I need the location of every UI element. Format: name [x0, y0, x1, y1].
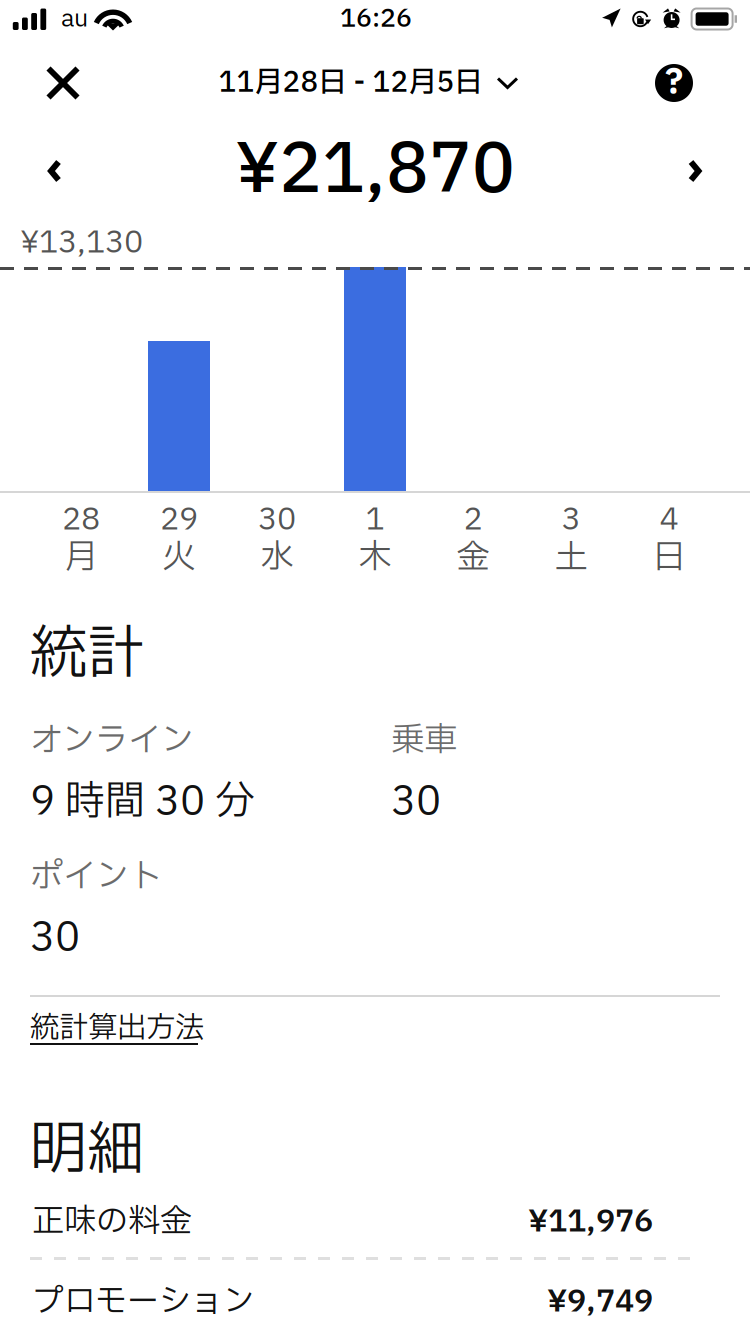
staticText: au — [61, 1, 88, 37]
staticText: 2 — [463, 497, 482, 543]
button[interactable]: 11月28日 - 12月5日 — [218, 63, 518, 103]
staticText: ポイント — [30, 852, 162, 902]
button[interactable]: Previous week — [0, 140, 110, 202]
staticText: 木 — [358, 533, 391, 583]
staticText: 30 — [30, 908, 80, 968]
staticText: 1 — [365, 497, 384, 543]
staticText: ¥11,976 — [528, 1199, 653, 1245]
staticText: ? — [665, 57, 683, 109]
staticText: 水 — [260, 533, 293, 583]
staticText: 統計算出方法 — [30, 1006, 204, 1050]
staticText: 金 — [456, 533, 489, 583]
staticText: 正味の料金 — [32, 1198, 192, 1246]
staticText: 11月28日 - 12月5日 — [218, 62, 482, 104]
staticText: 3 — [561, 497, 580, 543]
staticText: 4 — [659, 497, 678, 543]
staticText: 土 — [554, 533, 587, 583]
staticText: 乗車 — [391, 716, 457, 766]
button[interactable]: Help — [633, 63, 715, 103]
button[interactable]: Close — [22, 63, 104, 103]
staticText: 30 — [258, 497, 296, 543]
staticText: ¥13,130 — [20, 220, 143, 266]
staticText: 日 — [652, 533, 685, 583]
staticText: ¥9,749 — [547, 1279, 653, 1325]
staticText: 16:26 — [340, 0, 412, 38]
staticText: ¥21,870 — [235, 120, 515, 222]
staticText: 火 — [162, 533, 195, 583]
staticText: 9 時間 30 分 — [30, 772, 255, 832]
button[interactable]: 統計算出方法 — [30, 997, 204, 1045]
button[interactable]: 正味の料金 — [0, 1200, 750, 1244]
staticText: 月 — [64, 533, 97, 583]
button[interactable]: プロモーション — [0, 1280, 750, 1324]
staticText: 29 — [160, 497, 198, 543]
staticText: 明細 — [30, 1108, 144, 1194]
staticText: オンライン — [30, 716, 194, 766]
staticText: 統計 — [30, 612, 144, 698]
staticText: プロモーション — [32, 1278, 255, 1326]
staticText: 30 — [391, 772, 441, 832]
staticText: 28 — [62, 497, 100, 543]
button[interactable]: Next week — [640, 140, 750, 202]
